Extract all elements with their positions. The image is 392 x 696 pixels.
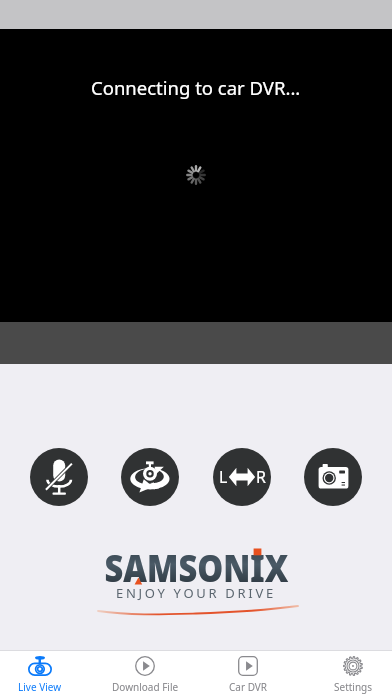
- button[interactable]: Take photo: [304, 448, 362, 506]
- staticText: Settings: [334, 680, 373, 694]
- staticText: SAMSONIX: [104, 542, 288, 592]
- button[interactable]: Live View: [0, 651, 92, 696]
- staticText: Download File: [112, 680, 179, 694]
- button[interactable]: Swap left and right camera: [213, 448, 271, 506]
- staticText: ENJOY YOUR DRIVE: [116, 584, 276, 602]
- staticText: Connecting to car DVR...: [91, 75, 301, 100]
- button[interactable]: Download File: [93, 651, 197, 696]
- staticText: R: [256, 466, 266, 488]
- button[interactable]: Rotate camera: [121, 448, 179, 506]
- staticText: Live View: [18, 680, 62, 694]
- button[interactable]: Settings: [301, 651, 392, 696]
- staticText: Car DVR: [229, 680, 268, 694]
- staticText: L: [219, 466, 228, 488]
- button[interactable]: Mute microphone: [30, 448, 88, 506]
- button[interactable]: Car DVR: [196, 651, 300, 696]
